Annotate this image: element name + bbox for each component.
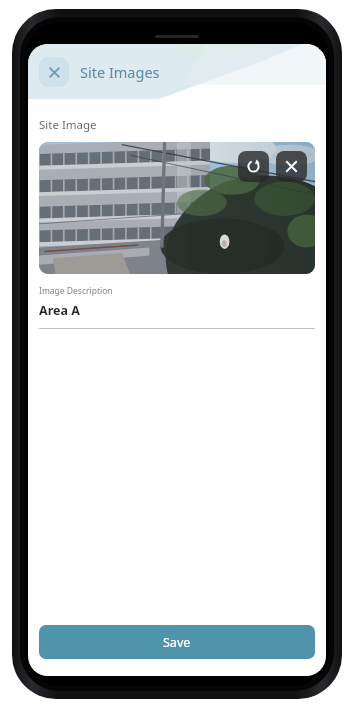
staticText: Area A [39,302,80,319]
staticText: Site Images [80,62,160,82]
button[interactable]: Close [39,57,69,87]
button[interactable]: Save [39,625,315,659]
staticText: Image Description [39,285,113,297]
staticText: Site Image [39,117,97,133]
button[interactable]: Rotate image [238,151,269,182]
button[interactable]: Remove image [276,151,307,182]
staticText: Save [163,634,191,651]
